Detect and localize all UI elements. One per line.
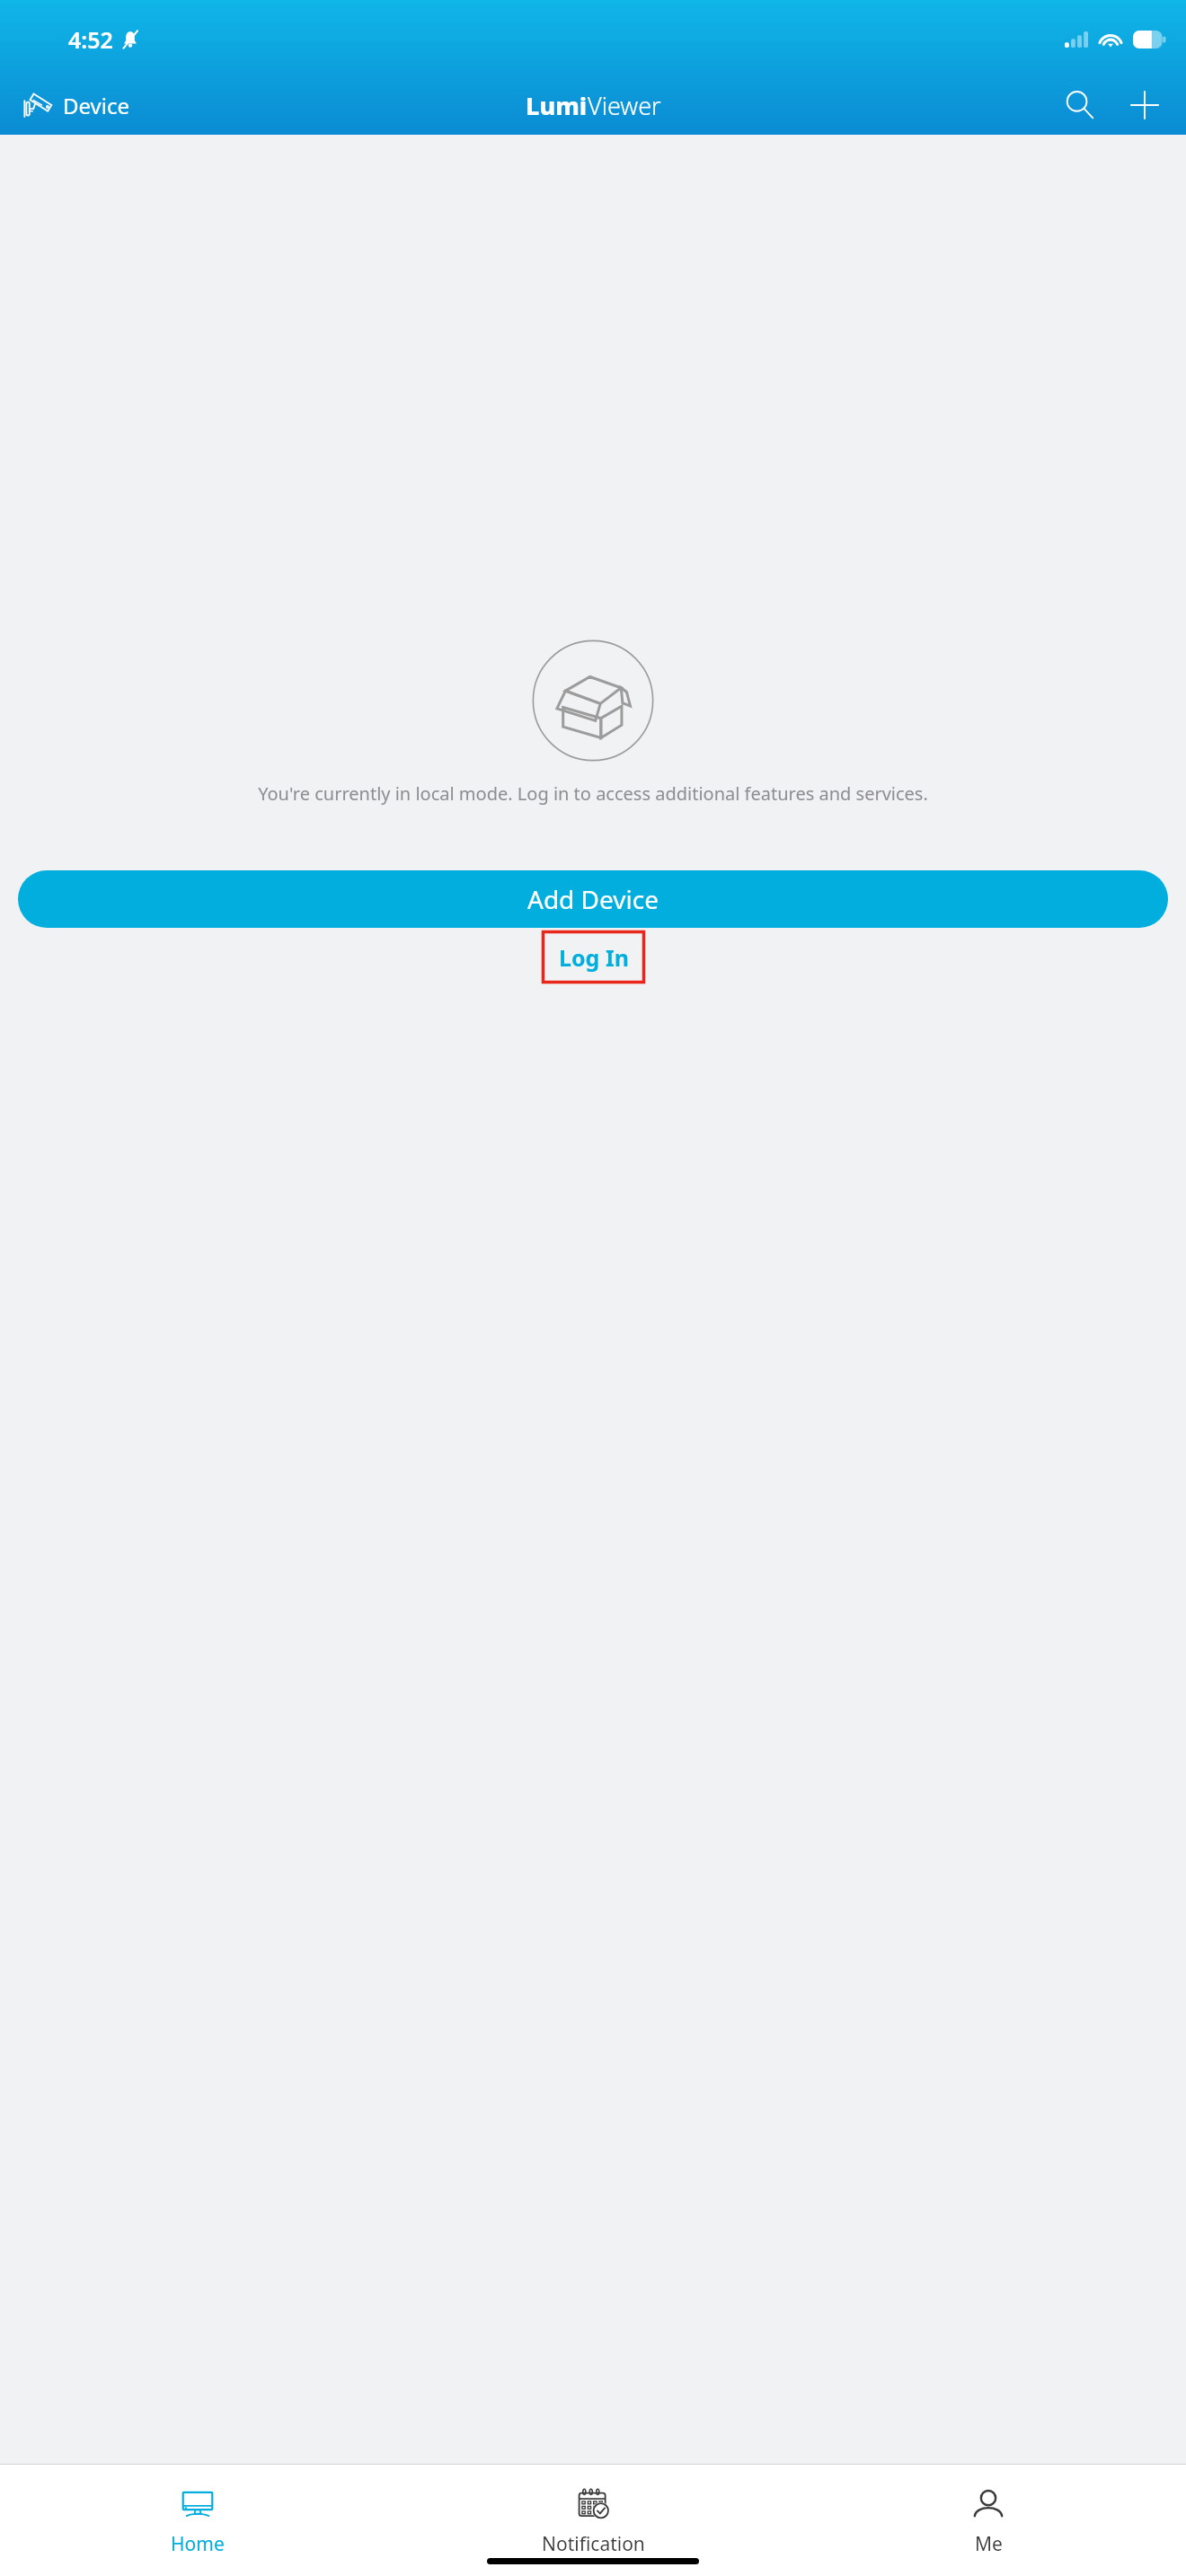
staticText: Me <box>975 2531 1003 2557</box>
staticText: 4:52 <box>68 24 113 55</box>
button[interactable]: Device <box>18 84 136 126</box>
button[interactable]: Log In <box>544 932 643 982</box>
button[interactable]: Me <box>791 2465 1186 2557</box>
staticText: Home <box>171 2531 225 2557</box>
staticText: Device <box>63 91 130 120</box>
staticText: You're currently in local mode. Log in t… <box>40 781 1146 806</box>
staticText: Log In <box>559 942 629 973</box>
staticText: Viewer <box>588 89 661 122</box>
button[interactable]: Add <box>1120 80 1170 130</box>
staticText: Notification <box>542 2531 645 2557</box>
button[interactable]: Search <box>1055 80 1105 130</box>
staticText: Add Device <box>527 882 659 916</box>
staticText: Lumi <box>526 89 588 122</box>
button[interactable]: Notification <box>395 2465 791 2557</box>
button[interactable]: Add Device <box>18 870 1168 928</box>
button[interactable]: Home <box>0 2465 395 2557</box>
